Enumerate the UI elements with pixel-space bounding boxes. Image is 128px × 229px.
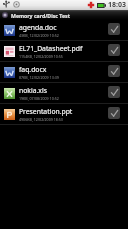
staticText: 43KB, 12/02/2009 10:52 [19, 33, 59, 38]
staticText: 87KB, 12/02/2009 13:39 [19, 75, 59, 80]
staticText: 1154KB, 12/02/2009 10:55 [19, 54, 63, 59]
staticText: 4906KB, 12/02/2009 18:53 [19, 117, 63, 122]
staticText: 19KB, 07/08/2009 10:52 [19, 96, 59, 101]
button[interactable]: Presentation.ppt [0, 104, 128, 124]
staticText: agenda.doc [19, 23, 57, 32]
button[interactable]: agenda.doc [0, 20, 128, 40]
button[interactable]: Select file [108, 86, 120, 98]
button[interactable]: Select file [108, 23, 120, 35]
staticText: faq.docx [19, 65, 47, 74]
staticText: nokia.xls [19, 86, 47, 95]
staticText: Memory card/Disc Test [11, 12, 70, 19]
staticText: EL71_Datasheet.pdf [19, 44, 83, 53]
button[interactable]: Select file [108, 107, 120, 119]
staticText: 18:03 [108, 0, 126, 10]
staticText: Presentation.ppt [19, 107, 73, 116]
button[interactable]: Select file [108, 65, 120, 77]
button[interactable]: nokia.xls [0, 83, 128, 103]
button[interactable]: EL71_Datasheet.pdf [0, 41, 128, 61]
button[interactable]: faq.docx [0, 62, 128, 82]
button[interactable]: Select file [108, 44, 120, 56]
